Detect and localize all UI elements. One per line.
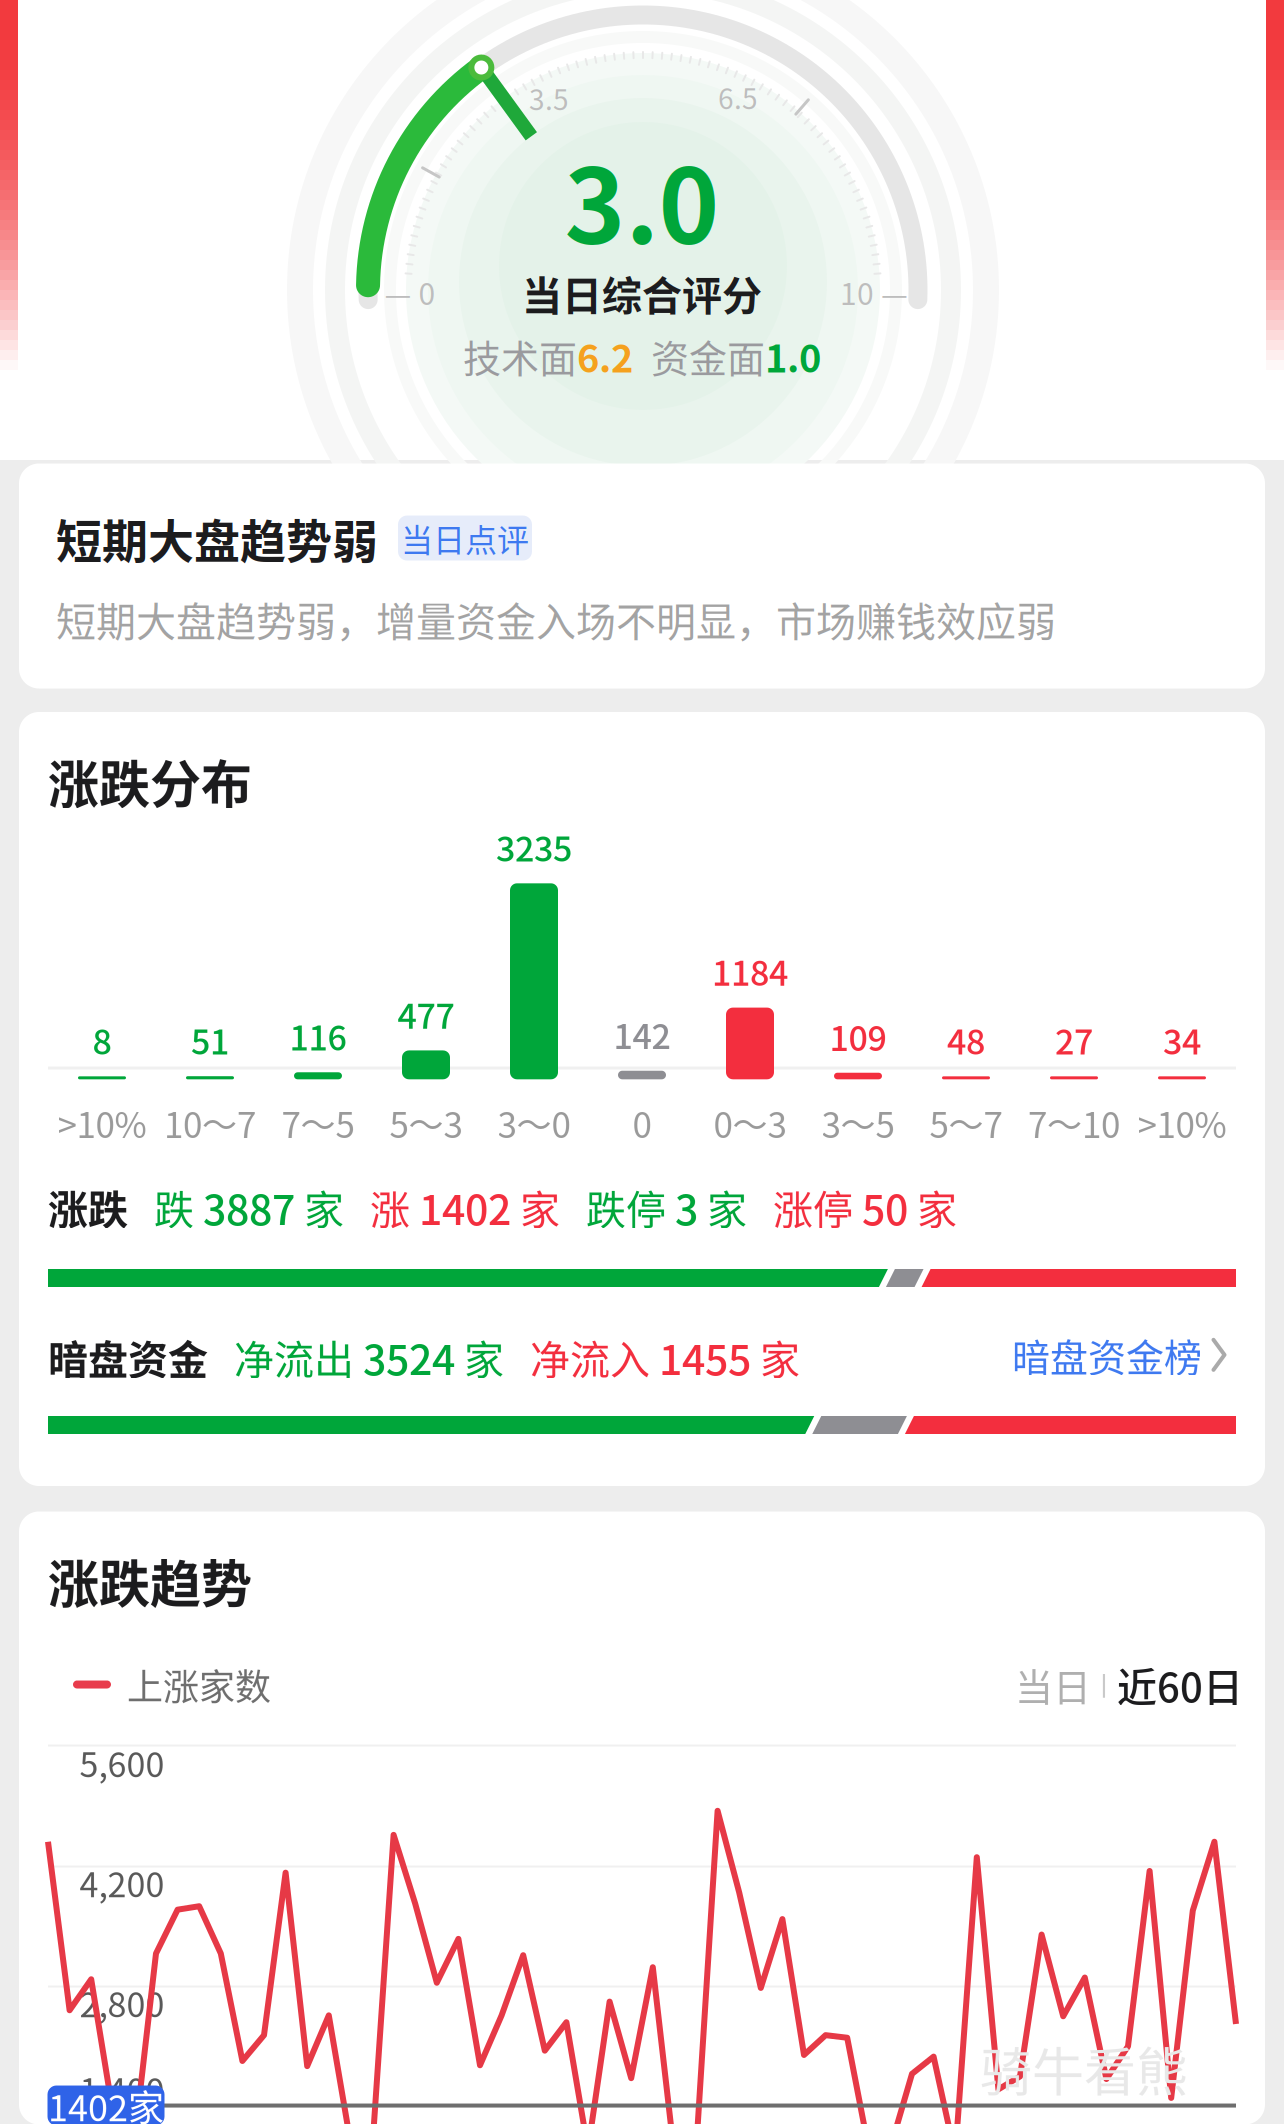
staticText: 7〜5 (281, 1097, 354, 1148)
staticText: 暗盘资金榜 (1012, 1327, 1202, 1382)
staticText: 34 (1163, 1015, 1201, 1064)
staticText: 50 (862, 1177, 908, 1237)
staticText: 8 (92, 1015, 111, 1064)
staticText: 短期大盘趋势弱 (56, 505, 378, 571)
staticText: 近60日 (1117, 1655, 1243, 1713)
staticText: 资金面 (633, 328, 765, 383)
button[interactable]: 当日 (1015, 1657, 1091, 1712)
staticText: 当日综合评分 (522, 264, 762, 322)
staticText: 1184 (712, 946, 788, 996)
staticText: 51 (191, 1015, 229, 1064)
staticText: >10% (1137, 1097, 1226, 1148)
staticText: 1402 (419, 1177, 511, 1237)
staticText: 1402家 (48, 2079, 164, 2124)
button[interactable]: 暗盘资金榜 (1012, 1327, 1236, 1382)
staticText: 上涨家数 (127, 1658, 271, 1710)
staticText: 4,200 (79, 1858, 164, 1907)
staticText: 当日点评 (401, 515, 529, 561)
staticText: 3887 (203, 1177, 295, 1237)
staticText: 骑牛看熊 (980, 2031, 1188, 2106)
staticText: 涨跌 (48, 1178, 128, 1236)
staticText: 家 (751, 1328, 800, 1386)
staticText: >10% (57, 1097, 146, 1148)
staticText: 当日 (1015, 1657, 1091, 1712)
staticText: 跌 (154, 1178, 203, 1236)
staticText: 家 (295, 1178, 344, 1236)
staticText: 涨跌分布 (48, 744, 252, 818)
staticText: 5,600 (79, 1738, 164, 1787)
staticText: 109 (829, 1011, 886, 1061)
staticText: 2,800 (79, 1978, 164, 2027)
staticText: 3 (675, 1177, 698, 1237)
staticText: 142 (613, 1009, 670, 1059)
staticText: — 0 (384, 270, 435, 314)
staticText: 3524 (363, 1327, 455, 1387)
staticText: 3.0 (564, 124, 719, 273)
staticText: 3.5 (529, 78, 569, 118)
button[interactable]: 近60日 (1117, 1655, 1243, 1713)
staticText: 0 (632, 1097, 651, 1148)
staticText: 6.5 (718, 77, 758, 117)
staticText: 家 (698, 1178, 747, 1236)
staticText: 477 (397, 989, 454, 1038)
staticText: 净流入 (530, 1328, 659, 1386)
staticText: 116 (289, 1011, 346, 1060)
staticText: 7〜10 (1028, 1097, 1120, 1148)
staticText: 暗盘资金 (48, 1328, 208, 1386)
staticText: 涨跌趋势 (48, 1544, 252, 1617)
staticText: 净流出 (234, 1328, 363, 1386)
staticText: 家 (511, 1178, 560, 1236)
staticText: 48 (947, 1015, 985, 1064)
staticText: 跌停 (586, 1178, 675, 1236)
staticText: 1455 (659, 1327, 751, 1387)
staticText: 3〜5 (821, 1097, 894, 1148)
staticText: 家 (455, 1328, 504, 1386)
staticText: 丨 (1091, 1666, 1117, 1703)
staticText: 0〜3 (713, 1097, 786, 1148)
staticText: 3235 (496, 822, 572, 871)
staticText: 3〜0 (497, 1097, 570, 1148)
staticText: 涨 (370, 1178, 419, 1236)
staticText: 5〜3 (389, 1097, 462, 1148)
staticText: 技术面 (463, 328, 577, 383)
staticText: 5〜7 (929, 1097, 1002, 1148)
staticText: 短期大盘趋势弱，增量资金入场不明显，市场赚钱效应弱 (56, 590, 1056, 648)
staticText: 涨停 (773, 1178, 862, 1236)
staticText: 10 — (840, 270, 908, 314)
staticText: 家 (908, 1178, 957, 1236)
staticText: 10〜7 (164, 1097, 256, 1148)
staticText: 1,400 (79, 2064, 164, 2113)
staticText: 1.0 (765, 328, 821, 383)
staticText: 6.2 (577, 328, 633, 383)
staticText: 27 (1055, 1015, 1093, 1064)
